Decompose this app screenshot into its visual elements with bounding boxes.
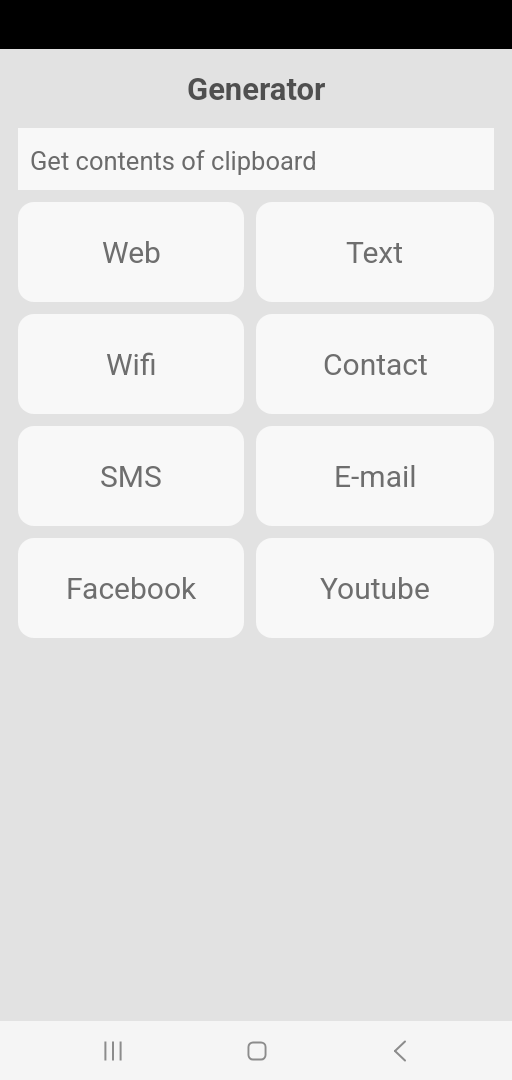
staticText: Contact xyxy=(323,347,428,382)
staticText: Get contents of clipboard xyxy=(30,146,317,176)
staticText: Youtube xyxy=(320,571,430,606)
button[interactable]: Text xyxy=(256,202,494,302)
button[interactable]: Home xyxy=(185,1021,328,1080)
button[interactable]: Facebook xyxy=(18,538,244,638)
staticText: Web xyxy=(102,235,161,270)
staticText: SMS xyxy=(100,459,162,494)
button[interactable]: Recent apps xyxy=(41,1021,185,1080)
staticText: E-mail xyxy=(334,459,417,494)
staticText: Wifi xyxy=(106,347,157,382)
button[interactable]: Web xyxy=(18,202,244,302)
button[interactable]: Contact xyxy=(256,314,494,414)
button[interactable]: Back xyxy=(328,1021,471,1080)
button[interactable]: E-mail xyxy=(256,426,494,526)
staticText: Generator xyxy=(187,71,326,107)
button[interactable]: Wifi xyxy=(18,314,244,414)
button[interactable]: Youtube xyxy=(256,538,494,638)
staticText: Text xyxy=(346,235,404,270)
button[interactable]: Get contents of clipboard xyxy=(18,128,494,190)
button[interactable]: SMS xyxy=(18,426,244,526)
staticText: Facebook xyxy=(66,571,197,606)
